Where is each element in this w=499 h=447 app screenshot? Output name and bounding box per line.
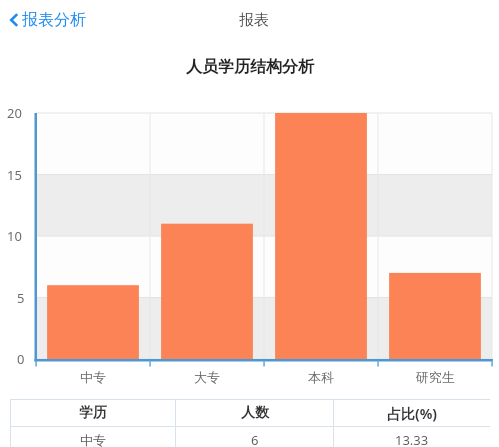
staticText: 10: [7, 227, 22, 245]
staticText: 13.33: [395, 431, 429, 447]
button[interactable]: 报表分析: [4, 5, 91, 35]
staticText: 学历: [79, 404, 107, 422]
staticText: 20: [7, 104, 22, 122]
staticText: 中专: [80, 432, 106, 447]
staticText: 占比(%): [387, 404, 438, 423]
staticText: 中专: [80, 369, 106, 385]
staticText: 15: [7, 166, 22, 184]
staticText: 报表分析: [22, 10, 86, 30]
staticText: 0: [17, 350, 25, 368]
staticText: 本科: [308, 369, 334, 385]
staticText: 5: [17, 289, 25, 307]
button[interactable]: 中专: [10, 426, 490, 447]
staticText: 大专: [194, 369, 220, 385]
staticText: 报表: [239, 11, 269, 30]
staticText: 人数: [241, 404, 269, 422]
staticText: 人员学历结构分析: [186, 57, 314, 77]
staticText: 6: [251, 431, 259, 447]
staticText: 研究生: [416, 369, 455, 385]
button[interactable]: 学历: [10, 399, 490, 426]
